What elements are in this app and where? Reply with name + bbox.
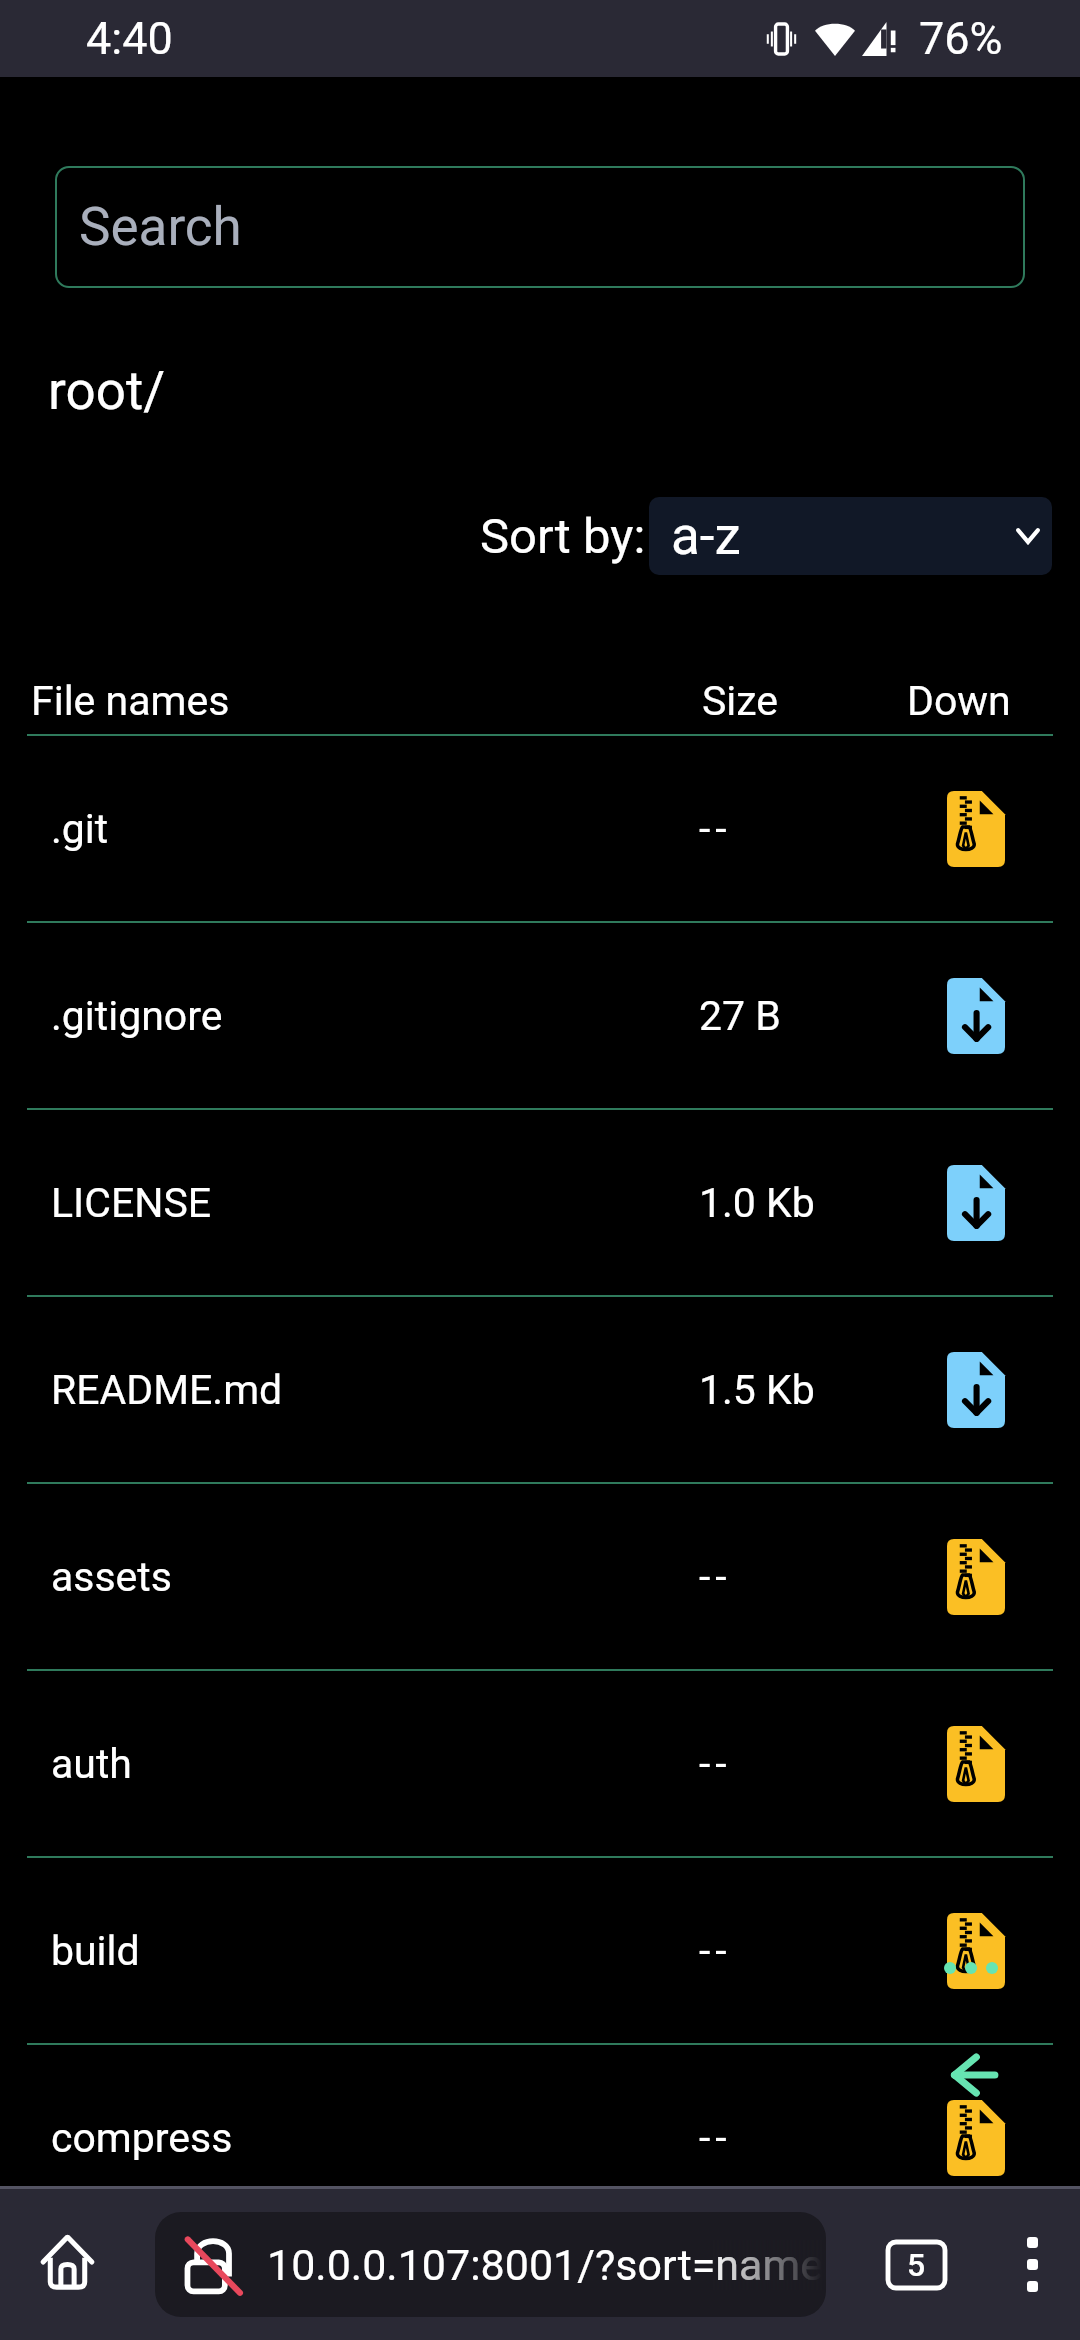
button[interactable]: Archive — [947, 1539, 1005, 1615]
button[interactable]: compress — [0, 2045, 1080, 2230]
staticText: -- — [699, 1740, 732, 1788]
staticText: a-z — [671, 505, 741, 567]
staticText: 4:40 — [86, 12, 173, 65]
staticText: -- — [699, 1927, 732, 1975]
staticText: 5 — [907, 2246, 926, 2284]
staticText: 1.0 Kb — [699, 1179, 815, 1227]
staticText: README.md — [51, 1366, 283, 1414]
button[interactable]: Archive — [947, 1726, 1005, 1802]
button[interactable]: Tabs — [846, 2189, 986, 2340]
staticText: 10.0.0.107:8001/?sort=nameas — [267, 2240, 822, 2290]
staticText: -- — [699, 1553, 732, 1601]
staticText: File names — [31, 677, 230, 725]
staticText: Sort by: — [480, 508, 646, 565]
staticText: compress — [51, 2114, 233, 2162]
staticText: 27 B — [699, 992, 781, 1040]
button[interactable]: Home — [0, 2189, 135, 2340]
button[interactable]: README.md — [0, 1297, 1080, 1482]
staticText: root/ — [48, 360, 166, 422]
staticText: assets — [51, 1553, 172, 1601]
button[interactable]: Archive — [947, 791, 1005, 867]
staticText: 1.5 Kb — [699, 1366, 815, 1414]
staticText: Search — [79, 196, 242, 258]
button[interactable]: assets — [0, 1484, 1080, 1669]
button[interactable]: .gitignore — [0, 923, 1080, 1108]
staticText: .git — [51, 805, 109, 853]
staticText: auth — [51, 1740, 132, 1788]
button[interactable]: Archive — [947, 1913, 1005, 1989]
staticText: -- — [699, 2114, 732, 2162]
button[interactable]: More options — [984, 2189, 1080, 2340]
button[interactable]: Archive — [947, 2100, 1005, 2176]
button[interactable]: build — [0, 1858, 1080, 2043]
button[interactable]: .git — [0, 736, 1080, 921]
button[interactable]: Download file — [947, 1165, 1005, 1241]
staticText: build — [51, 1927, 140, 1975]
staticText: -- — [699, 805, 732, 853]
staticText: Size — [702, 677, 779, 725]
button[interactable]: Search — [55, 166, 1025, 288]
button[interactable]: Download file — [947, 978, 1005, 1054]
staticText: Down — [907, 677, 1011, 725]
button[interactable]: Download file — [947, 1352, 1005, 1428]
staticText: 76% — [919, 12, 1003, 65]
staticText: LICENSE — [51, 1179, 212, 1227]
button[interactable]: auth — [0, 1671, 1080, 1856]
button[interactable]: 10.0.0.107:8001/?sort=nameas — [155, 2212, 826, 2317]
button[interactable]: LICENSE — [0, 1110, 1080, 1295]
button[interactable]: a-z — [649, 497, 1052, 575]
staticText: .gitignore — [51, 992, 223, 1040]
